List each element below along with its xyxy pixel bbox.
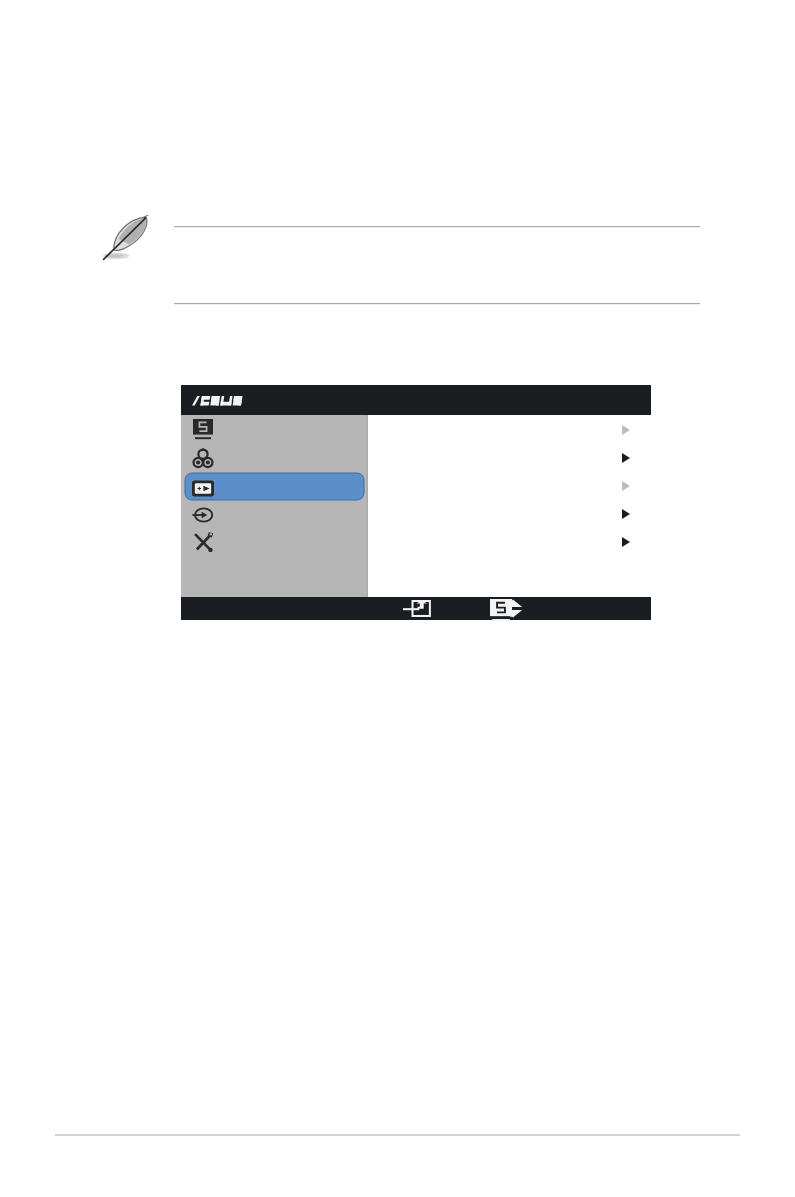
button[interactable]: Input Select xyxy=(183,502,366,529)
button[interactable]: Splendid xyxy=(183,418,366,445)
button[interactable]: Splendid xyxy=(490,599,512,617)
button[interactable]: Color xyxy=(183,446,366,473)
button[interactable]: Navigate up or down xyxy=(503,599,523,618)
button[interactable]: Image xyxy=(183,473,366,500)
other: ASUS xyxy=(191,391,243,409)
button[interactable]: System Setup xyxy=(183,530,366,557)
button[interactable]: Input Select xyxy=(403,600,431,617)
other: Note xyxy=(100,214,162,276)
